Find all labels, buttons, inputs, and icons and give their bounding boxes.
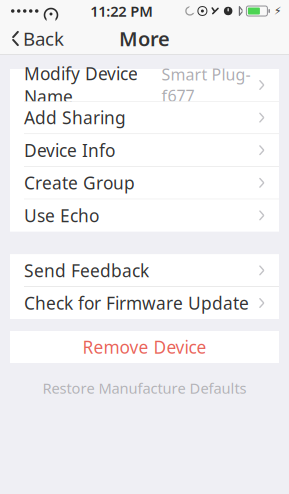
staticText: Modify Device Name (24, 62, 138, 108)
button[interactable]: Add Sharing (10, 102, 279, 134)
button[interactable]: Modify Device Name (10, 69, 279, 101)
staticText: Send Feedback (24, 259, 149, 282)
button[interactable]: Back (0, 20, 64, 57)
staticText: Check for Firmware Update (24, 291, 249, 314)
button[interactable]: Send Feedback (10, 254, 279, 286)
staticText: ⚡︎ (274, 5, 281, 17)
staticText: Restore Manufacture Defaults (42, 378, 246, 398)
button[interactable]: Create Group (10, 167, 279, 199)
staticText: Back (23, 26, 64, 51)
staticText: Remove Device (82, 335, 206, 358)
button[interactable]: Check for Firmware Update (10, 287, 279, 319)
staticText: More (119, 25, 170, 52)
staticText: Smart Plug-f677 (161, 64, 250, 106)
button[interactable]: Use Echo (10, 199, 279, 231)
staticText: Device Info (24, 139, 115, 162)
button[interactable]: Remove Device (10, 331, 279, 363)
staticText: Add Sharing (24, 106, 126, 129)
staticText: Use Echo (24, 204, 99, 227)
button[interactable]: Restore Manufacture Defaults (10, 375, 279, 401)
staticText: Create Group (24, 171, 135, 194)
button[interactable]: Device Info (10, 134, 279, 166)
staticText: 11:22 PM (90, 1, 153, 21)
